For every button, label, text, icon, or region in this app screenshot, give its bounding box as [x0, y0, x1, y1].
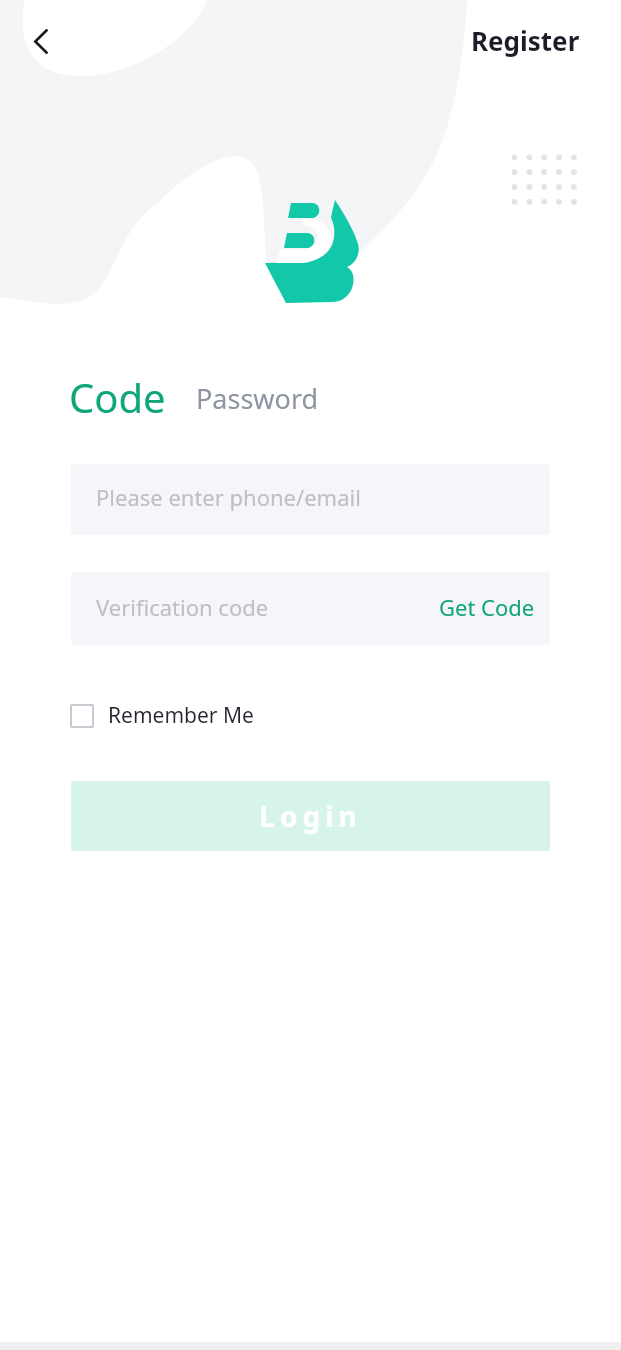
- staticText: Get Code: [439, 592, 535, 622]
- staticText: Please enter phone/email: [96, 482, 361, 512]
- staticText: Password: [196, 380, 319, 417]
- staticText: Register: [471, 23, 580, 58]
- button[interactable]: Back: [18, 18, 64, 64]
- staticText: Login: [259, 797, 362, 835]
- staticText: Verification code: [96, 592, 269, 622]
- button[interactable]: Get Code: [439, 592, 535, 622]
- button[interactable]: Login: [71, 781, 550, 851]
- button[interactable]: Code: [69, 370, 166, 424]
- staticText: Remember Me: [108, 701, 254, 730]
- button[interactable]: Please enter phone/email: [71, 464, 550, 535]
- button[interactable]: Remember Me: [70, 698, 254, 733]
- button[interactable]: Password: [196, 380, 319, 417]
- staticText: Code: [69, 370, 166, 424]
